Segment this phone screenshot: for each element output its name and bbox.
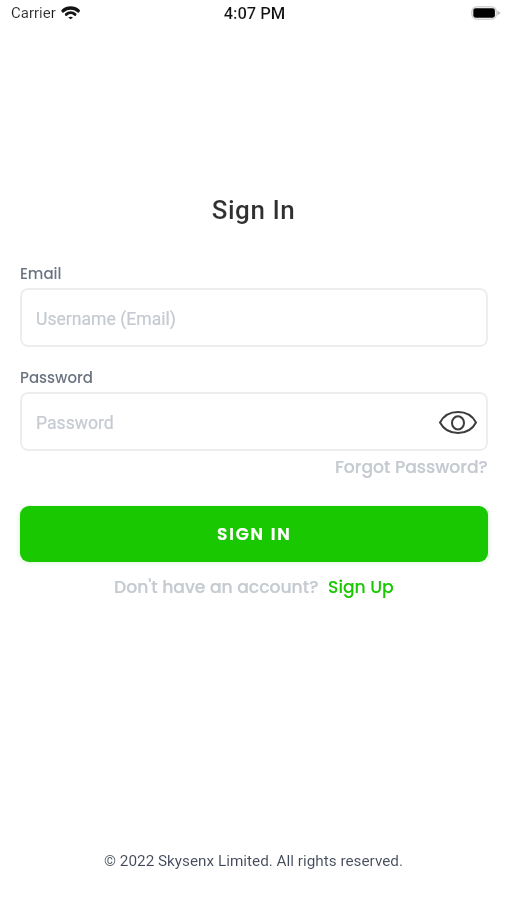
staticText: SIGN IN [217,522,292,546]
button[interactable]: Password [20,392,488,451]
staticText: 4:07 PM [1,4,507,23]
staticText: Username (Email) [36,309,176,330]
staticText: Sign In [0,195,507,225]
button[interactable]: Username (Email) [20,288,488,347]
staticText: Email [20,263,62,284]
staticText: Carrier [11,4,56,22]
button[interactable]: Sign Up [328,575,394,599]
staticText: © 2022 Skysenx Limited. All rights reser… [0,852,507,870]
button[interactable]: SIGN IN [20,506,488,562]
button[interactable]: Show password [436,400,480,444]
staticText: Don't have an account? [114,575,319,599]
staticText: Password [20,367,93,388]
staticText: Password [36,413,114,434]
button[interactable]: Forgot Password? [335,455,488,479]
